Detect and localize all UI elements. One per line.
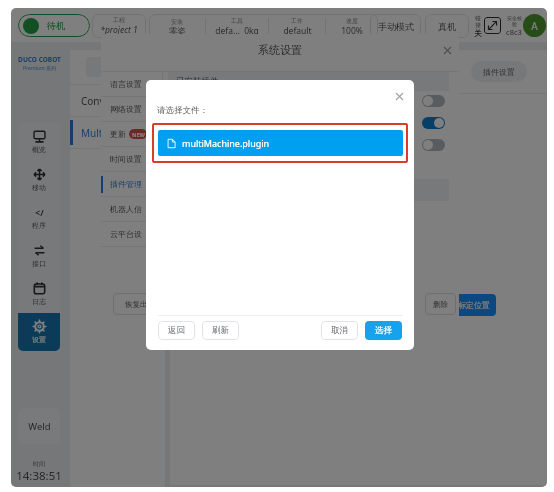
staticText: 真机 <box>438 21 456 32</box>
button[interactable]: Conv... <box>70 85 165 116</box>
staticText: Weld <box>28 420 51 433</box>
staticText: Conv... <box>81 94 113 108</box>
button[interactable]: Weld <box>18 408 60 444</box>
button[interactable]: 返回 <box>158 321 195 340</box>
staticText: 100% <box>341 25 363 37</box>
button[interactable]: Fullscreen <box>484 17 501 34</box>
staticText: 接口 <box>32 259 46 268</box>
staticText: 安装 <box>171 18 183 26</box>
staticText: 系统设置 <box>101 43 459 57</box>
button[interactable]: Account <box>523 14 546 37</box>
staticText: 插件管理 <box>110 179 142 189</box>
button[interactable]: Close dialog <box>392 89 406 103</box>
staticText: 请选择文件： <box>157 105 208 116</box>
staticText: 14:38:51 <box>16 468 62 484</box>
staticText: 设置 <box>32 335 46 344</box>
staticText: Multi... <box>81 126 114 140</box>
staticText: </> <box>33 207 46 219</box>
staticText: c8c3 <box>506 27 522 37</box>
staticText: 速度 <box>346 17 358 25</box>
button[interactable]: </> <box>18 199 60 237</box>
button[interactable]: 手动模式 <box>370 14 421 38</box>
button[interactable]: 插件设置 <box>471 61 527 82</box>
button[interactable]: 工程 <box>86 57 150 77</box>
button[interactable]: 待机 <box>18 14 90 37</box>
staticText: *project 1 <box>100 24 138 36</box>
staticText: DUCO COBOT <box>18 55 61 64</box>
staticText: 恢复出厂 <box>125 300 155 309</box>
staticText: 已安装插件 <box>176 76 219 87</box>
staticText: 碰 <box>475 15 481 22</box>
staticText: 零姿 <box>169 26 186 37</box>
staticText: 撞 <box>475 22 481 29</box>
staticText: 移动 <box>32 183 46 192</box>
button[interactable]: 工程 <box>92 14 146 38</box>
staticText: 待机 <box>47 20 65 31</box>
button[interactable]: Toggle plugin <box>422 95 445 107</box>
button[interactable]: 语言设置 <box>101 72 162 96</box>
button[interactable]: 机器人信 <box>101 197 162 221</box>
button[interactable]: 恢复出厂 <box>113 293 166 315</box>
button[interactable]: 时间设置 <box>101 147 162 171</box>
staticText: 网络设置 <box>110 104 142 114</box>
staticText: 删除 <box>433 300 448 309</box>
staticText: 工件 <box>291 17 303 25</box>
button[interactable]: 云平台设 <box>101 222 162 246</box>
button[interactable]: 更新 <box>110 122 162 146</box>
staticText: 标定位置 <box>458 300 490 310</box>
button[interactable]: 接口 <box>18 237 60 275</box>
staticText: 更新 <box>110 129 126 139</box>
button[interactable]: 设置 <box>18 313 60 351</box>
button[interactable]: 插件管理 <box>101 172 162 196</box>
button[interactable]: 真机 <box>425 14 469 38</box>
staticText: 程序 <box>32 221 46 230</box>
button[interactable]: 标定位置 <box>452 294 496 316</box>
button[interactable]: Toggle plugin <box>422 139 445 151</box>
button[interactable]: 选择 <box>365 321 402 340</box>
button[interactable]: 概览 <box>18 123 60 161</box>
button[interactable]: Multi... <box>70 117 165 148</box>
staticText: A <box>531 19 538 33</box>
button[interactable]: 日志 <box>18 275 60 313</box>
staticText: 语言设置 <box>110 79 142 89</box>
staticText: 返回 <box>168 325 185 336</box>
staticText: multiMachine.plugin <box>182 137 270 149</box>
staticText: 时间设置 <box>110 154 142 164</box>
staticText: 安全校 <box>507 15 522 21</box>
staticText: NEW <box>132 131 145 138</box>
staticText: 刷新 <box>212 325 229 336</box>
button[interactable]: Toggle plugin <box>422 117 445 129</box>
staticText: 日志 <box>32 297 46 306</box>
staticText: 概览 <box>32 145 46 154</box>
button[interactable]: 删除 <box>425 293 456 315</box>
staticText: Premium 系列 <box>23 65 56 72</box>
button[interactable]: 安装 <box>149 14 378 38</box>
staticText: 时间 <box>33 460 45 468</box>
button[interactable]: 移动 <box>18 161 60 199</box>
staticText: defa... 0kg <box>215 25 259 37</box>
staticText: 插件设置 <box>483 67 515 77</box>
staticText: 选择 <box>375 325 392 336</box>
staticText: 工程 <box>113 16 125 24</box>
staticText: 云平台设 <box>110 229 142 239</box>
button[interactable]: 安全校 <box>503 14 525 38</box>
button[interactable]: Close settings <box>440 43 454 57</box>
staticText: default <box>283 25 312 37</box>
staticText: 机器人信 <box>110 204 142 214</box>
button[interactable]: 刷新 <box>202 321 239 340</box>
button[interactable]: 网络设置 <box>101 97 162 121</box>
button[interactable]: 取消 <box>321 321 358 340</box>
staticText: 手动模式 <box>378 21 414 32</box>
button[interactable]: multiMachine.plugin <box>158 130 403 156</box>
staticText: 验 <box>512 21 517 27</box>
staticText: 工具 <box>231 17 243 25</box>
staticText: 关 <box>474 29 482 38</box>
staticText: 取消 <box>331 325 348 336</box>
button[interactable]: 碰 <box>472 14 484 38</box>
